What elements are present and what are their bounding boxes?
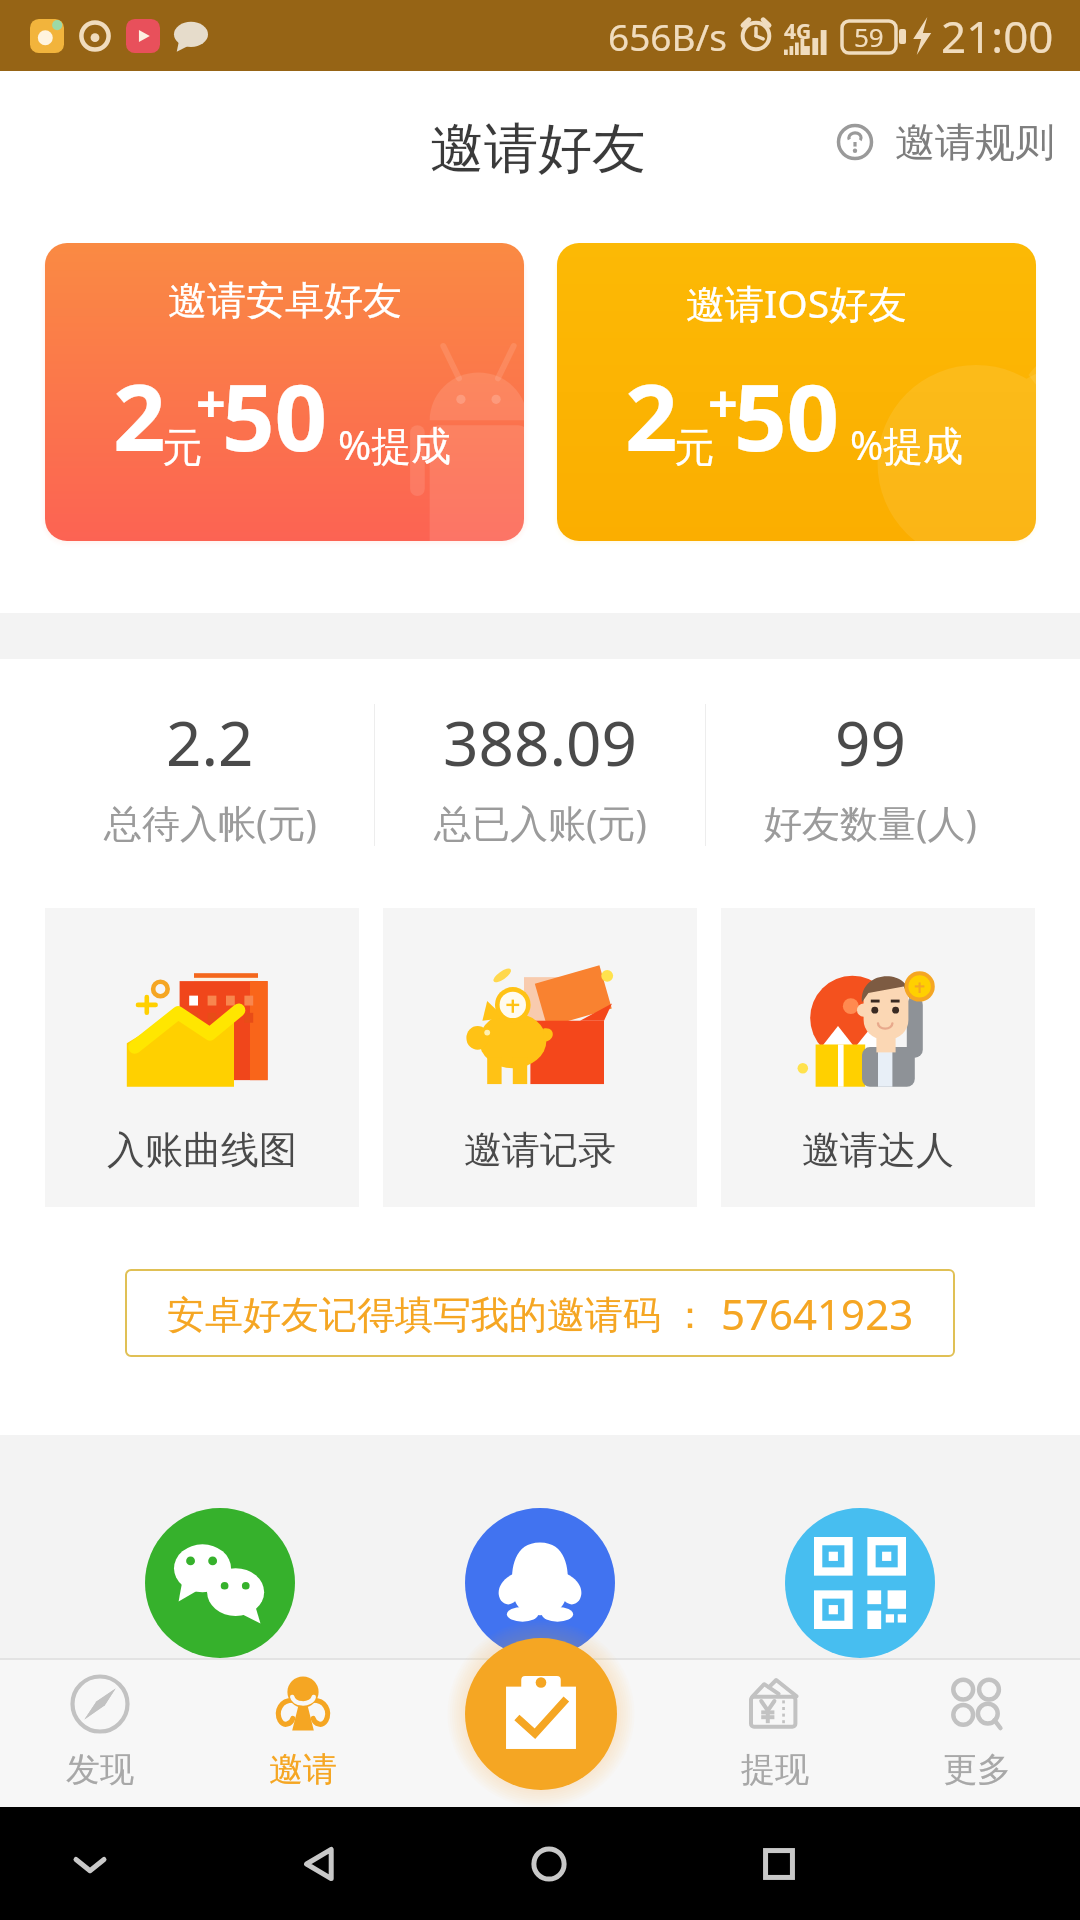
staticText: 99 [835, 700, 906, 784]
staticText: + [196, 367, 226, 438]
button[interactable]: 邀请规则 [836, 117, 1055, 167]
button[interactable]: 邀请 [203, 1658, 403, 1807]
staticText: 邀请IOS好友 [686, 276, 908, 329]
staticText: 安卓好友记得填写我的邀请码 ： [167, 1287, 709, 1339]
staticText: 发现 [66, 1748, 134, 1791]
other: Hide keyboard [62, 1836, 118, 1892]
staticText: 2.2 [166, 700, 254, 784]
button[interactable]: 99 [683, 700, 1057, 848]
staticText: 656B/s [608, 11, 728, 61]
button[interactable]: 388.09 [375, 700, 705, 848]
other: Home [521, 1836, 577, 1892]
staticText: 388.09 [443, 700, 637, 784]
staticText: 邀请规则 [895, 117, 1055, 167]
staticText: %提成 [338, 417, 452, 472]
staticText: 2 [625, 353, 678, 478]
staticText: 4G [784, 17, 812, 46]
staticText: 好友数量(人) [764, 796, 977, 848]
staticText: 更多 [943, 1748, 1011, 1791]
button[interactable]: 入账曲线图 [45, 908, 359, 1207]
staticText: 21:00 [941, 6, 1054, 66]
other: Back [292, 1836, 348, 1892]
button[interactable]: 提现 [675, 1658, 875, 1807]
staticText: 入账曲线图 [107, 1126, 297, 1174]
other: Recents [751, 1836, 807, 1892]
staticText: 邀请好友 [430, 115, 646, 183]
staticText: 邀请安卓好友 [168, 276, 402, 325]
button[interactable]: 邀请安卓好友 [45, 243, 524, 541]
staticText: 59 [854, 19, 884, 54]
button[interactable]: 发现 [0, 1658, 200, 1807]
staticText: 57641923 [721, 1285, 914, 1342]
staticText: 邀请达人 [802, 1126, 954, 1174]
button[interactable]: 邀请IOS好友 [557, 243, 1036, 541]
button[interactable]: WeChat [145, 1508, 295, 1658]
staticText: 2 [113, 353, 166, 478]
staticText: 提现 [741, 1748, 809, 1791]
staticText: 邀请记录 [464, 1126, 616, 1174]
button[interactable]: 邀请达人 [721, 908, 1035, 1207]
button[interactable]: 2.2 [23, 700, 397, 848]
button[interactable]: 邀请记录 [383, 908, 697, 1207]
button[interactable]: Tasks [465, 1638, 617, 1790]
staticText: 总待入帐(元) [104, 796, 317, 848]
button[interactable]: QR code [785, 1508, 935, 1658]
staticText: 元 [674, 422, 714, 472]
staticText: + [708, 367, 738, 438]
staticText: 邀请 [269, 1748, 337, 1791]
button[interactable]: QQ [465, 1508, 615, 1658]
staticText: 50 [222, 353, 328, 478]
staticText: %提成 [850, 417, 964, 472]
staticText: 元 [162, 422, 202, 472]
staticText: 总已入账(元) [434, 796, 647, 848]
button[interactable]: 安卓好友记得填写我的邀请码 ： [125, 1269, 955, 1357]
staticText: 50 [734, 353, 840, 478]
button[interactable]: 更多 [877, 1658, 1077, 1807]
